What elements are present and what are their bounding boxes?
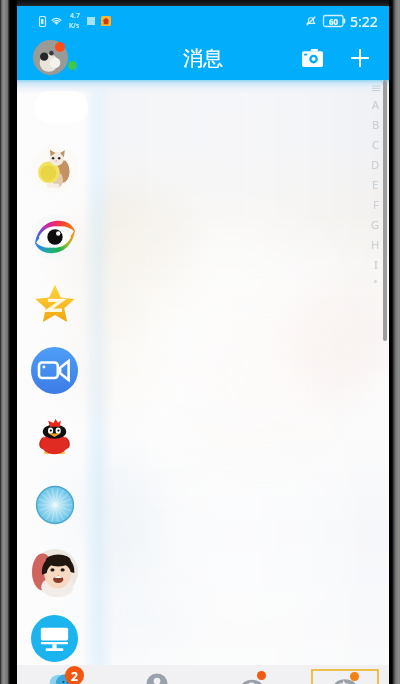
staticText: 5:22 xyxy=(350,12,378,31)
button[interactable]: Camera xyxy=(294,40,330,76)
button[interactable]: Moments xyxy=(229,665,275,684)
button[interactable] xyxy=(17,136,389,203)
button[interactable] xyxy=(17,337,389,404)
staticText: C xyxy=(372,137,379,152)
staticText: E xyxy=(372,177,379,192)
staticText: K/s xyxy=(69,21,80,31)
button[interactable] xyxy=(17,605,389,672)
button[interactable]: Add xyxy=(342,40,378,76)
staticText: 消息 xyxy=(183,46,223,71)
staticText: F xyxy=(373,197,379,212)
staticText: G xyxy=(371,217,380,232)
button[interactable] xyxy=(17,404,389,471)
button[interactable]: Me xyxy=(312,670,378,684)
button[interactable]: Profile xyxy=(33,36,81,80)
button[interactable] xyxy=(17,538,389,605)
button[interactable]: Contacts xyxy=(134,665,180,684)
staticText: 4.7 xyxy=(70,11,80,21)
button[interactable] xyxy=(17,471,389,538)
button[interactable] xyxy=(17,203,389,270)
staticText: H xyxy=(371,237,380,252)
staticText: I xyxy=(374,257,378,272)
staticText: B xyxy=(372,117,380,132)
staticText: A xyxy=(372,97,380,112)
staticText: D xyxy=(371,157,380,172)
button[interactable] xyxy=(17,270,389,337)
button[interactable]: Messages xyxy=(39,665,85,684)
staticText: 2 xyxy=(71,668,78,684)
staticText: 60 xyxy=(329,16,339,27)
